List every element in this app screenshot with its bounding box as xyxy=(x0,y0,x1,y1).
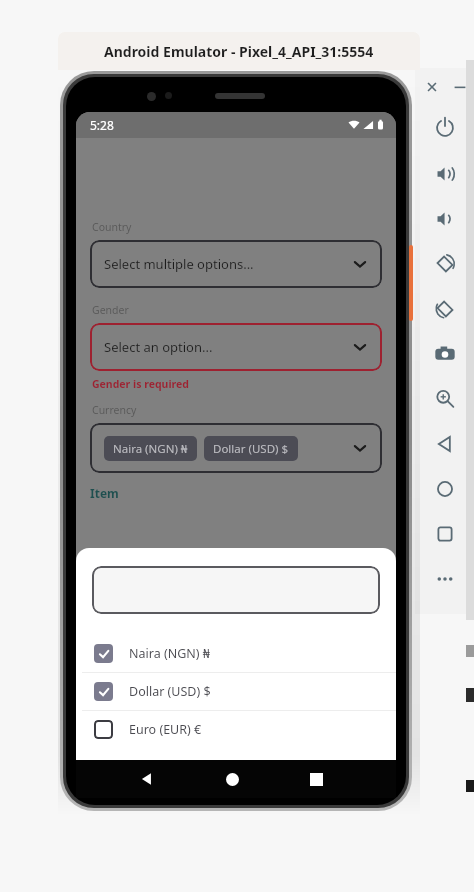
button[interactable]: More xyxy=(434,568,456,590)
staticText: Select an option... xyxy=(104,338,213,356)
button[interactable]: Overview xyxy=(434,523,456,545)
staticText: Country xyxy=(92,220,132,234)
staticText: Naira (NGN) ₦ xyxy=(113,441,188,457)
button[interactable]: Dollar (USD) $ xyxy=(76,673,396,710)
staticText: Naira (NGN) ₦ xyxy=(129,645,210,662)
staticText: Gender is required xyxy=(92,377,189,391)
staticText: Android Emulator - Pixel_4_API_31:5554 xyxy=(104,42,374,61)
staticText: Dollar (USD) $ xyxy=(129,683,211,700)
button[interactable]: Naira (NGN) ₦ xyxy=(90,423,382,473)
button[interactable]: Select an option... xyxy=(90,323,382,371)
button[interactable]: Dollar (USD) $ xyxy=(204,436,298,461)
button[interactable]: Rotate left xyxy=(434,253,456,275)
button[interactable]: Zoom xyxy=(434,388,456,410)
button[interactable]: Minimize xyxy=(451,78,469,96)
staticText: Euro (EUR) € xyxy=(129,721,202,738)
button[interactable]: Power xyxy=(434,116,456,138)
staticText: 5:28 xyxy=(90,117,114,133)
button[interactable]: Back xyxy=(434,433,456,455)
button[interactable]: Home xyxy=(226,773,239,786)
button[interactable]: Back xyxy=(138,770,156,788)
button[interactable]: Take screenshot xyxy=(434,343,456,365)
staticText: Currency xyxy=(92,403,137,417)
other: Open dropdown xyxy=(352,339,368,355)
button[interactable]: Select multiple options... xyxy=(90,240,382,288)
button[interactable]: Euro (EUR) € xyxy=(76,711,396,748)
button[interactable]: Volume down xyxy=(434,208,456,230)
button[interactable] xyxy=(92,566,380,614)
button[interactable]: Home xyxy=(434,478,456,500)
button[interactable]: Volume up xyxy=(434,163,456,185)
other: Open dropdown xyxy=(352,256,368,272)
button[interactable]: Naira (NGN) ₦ xyxy=(104,436,197,461)
staticText: Item xyxy=(90,485,119,501)
other: Open dropdown xyxy=(352,440,368,456)
staticText: Gender xyxy=(92,303,129,317)
button[interactable]: Rotate right xyxy=(434,298,456,320)
button[interactable]: Naira (NGN) ₦ xyxy=(76,635,396,672)
button[interactable]: Close xyxy=(423,78,441,96)
staticText: Dollar (USD) $ xyxy=(213,441,289,457)
staticText: Select multiple options... xyxy=(104,255,254,273)
